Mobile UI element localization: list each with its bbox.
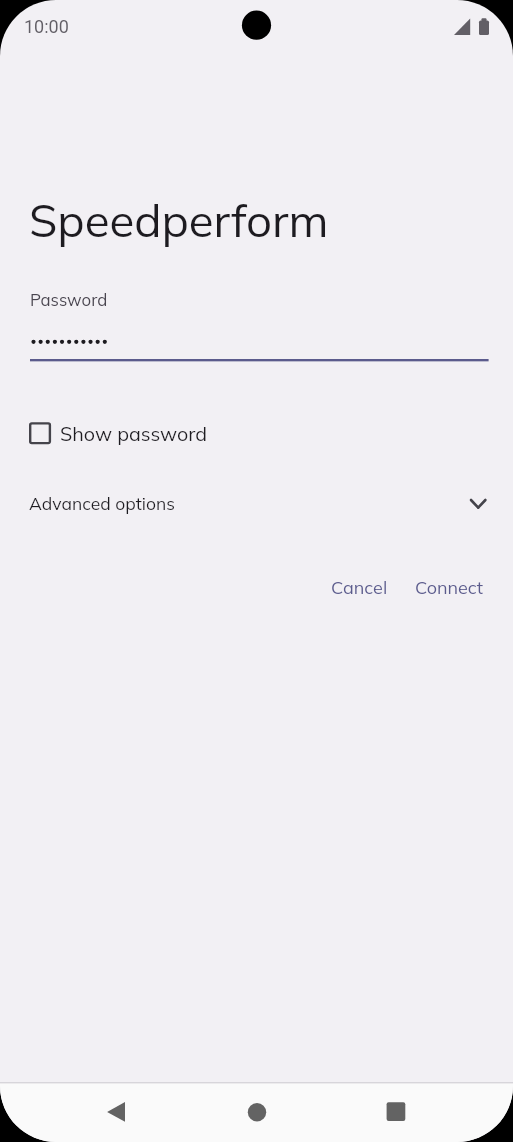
button[interactable]: Cancel bbox=[314, 567, 405, 607]
staticText: Advanced options bbox=[29, 492, 175, 514]
button[interactable]: Home bbox=[228, 1083, 286, 1141]
button[interactable]: Advanced options bbox=[0, 486, 513, 522]
button[interactable]: Connect bbox=[399, 567, 500, 607]
staticText: Password bbox=[30, 289, 108, 310]
staticText: Speedperform bbox=[29, 191, 329, 248]
staticText: 10:00 bbox=[24, 16, 69, 37]
other: Expand advanced options bbox=[465, 492, 491, 518]
button[interactable]: Password text field bbox=[30, 286, 489, 362]
staticText: Show password bbox=[60, 421, 208, 446]
staticText: Connect bbox=[415, 576, 484, 599]
button[interactable]: Back bbox=[87, 1083, 145, 1141]
button[interactable]: Show password bbox=[20, 412, 220, 456]
staticText: Cancel bbox=[331, 576, 388, 599]
button[interactable]: Recent apps bbox=[367, 1083, 425, 1141]
